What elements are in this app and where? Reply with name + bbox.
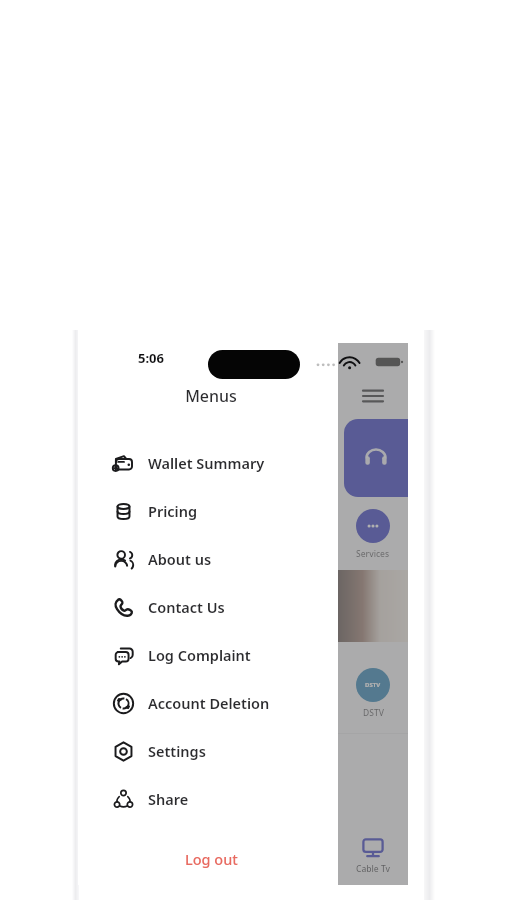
button[interactable]: Contact Us [78,583,338,631]
staticText: 5:06 [138,349,164,367]
button[interactable]: Pricing [78,487,338,535]
staticText: Cable Tv [356,863,391,875]
button[interactable]: Services [338,509,408,560]
staticText: Account Deletion [148,693,270,713]
staticText: Services [356,548,390,560]
staticText: Pricing [148,501,198,521]
button[interactable]: Account Deletion [78,679,338,727]
staticText: Log out [185,849,238,869]
button[interactable]: Cable Tv [338,836,408,885]
staticText: Share [148,789,189,809]
button[interactable]: Wallet Summary [78,439,338,487]
staticText: About us [148,549,212,569]
button[interactable]: About us [78,535,338,583]
button[interactable]: DSTV [338,668,408,719]
staticText: DSTV [363,707,384,719]
button[interactable]: Log Complaint [78,631,338,679]
staticText: Log Complaint [148,645,251,665]
button[interactable]: Share [78,775,338,823]
staticText: DSTV [365,681,381,689]
other: Menu [363,389,383,403]
button[interactable]: Log out [175,845,248,873]
staticText: Wallet Summary [148,453,265,473]
staticText: Contact Us [148,597,225,617]
staticText: Settings [148,741,206,761]
button[interactable] [344,419,408,497]
button[interactable]: Settings [78,727,338,775]
button[interactable] [338,570,408,642]
staticText: Menus [185,385,237,407]
